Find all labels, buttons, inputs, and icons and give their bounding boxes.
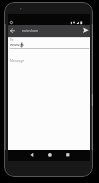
- staticText: www.ja: [10, 42, 24, 47]
- staticText: To: [10, 38, 14, 42]
- staticText: Message: [10, 58, 25, 63]
- staticText: noteshare: [22, 28, 39, 33]
